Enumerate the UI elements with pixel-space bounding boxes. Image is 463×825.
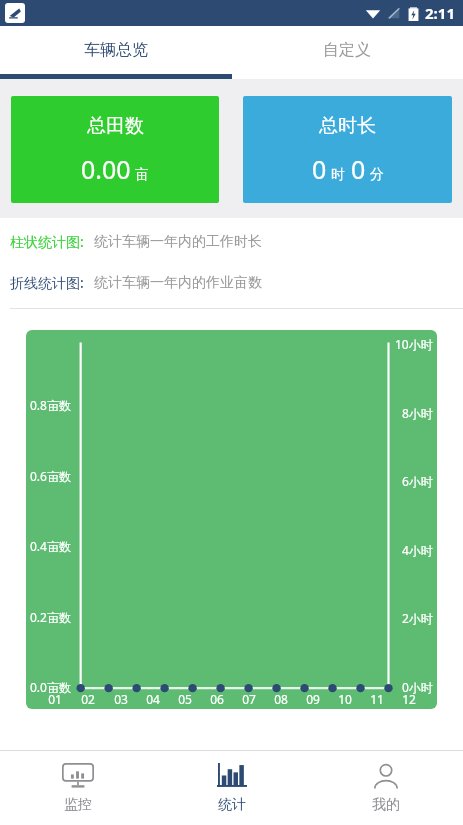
staticText: 0 bbox=[351, 152, 366, 186]
staticText: 柱状统计图: bbox=[10, 232, 84, 251]
staticText: 07 bbox=[242, 691, 256, 707]
staticText: 10小时 bbox=[395, 336, 433, 352]
staticText: 0小时 bbox=[402, 679, 433, 695]
staticText: 04 bbox=[146, 691, 160, 707]
staticText: 11 bbox=[370, 691, 384, 707]
button[interactable]: 总田数 bbox=[11, 96, 219, 203]
staticText: 10 bbox=[338, 691, 352, 707]
staticText: 01 bbox=[48, 691, 62, 707]
staticText: 06 bbox=[210, 691, 224, 707]
button[interactable]: 我的 bbox=[309, 751, 463, 825]
staticText: 02 bbox=[81, 691, 95, 707]
staticText: 总时长 bbox=[319, 114, 376, 138]
staticText: 监控 bbox=[64, 796, 92, 814]
button[interactable]: 监控 bbox=[0, 751, 155, 825]
staticText: 09 bbox=[306, 691, 320, 707]
staticText: 0.6亩数 bbox=[30, 468, 71, 484]
staticText: 统计 bbox=[218, 796, 246, 814]
staticText: 分 bbox=[370, 166, 384, 184]
staticText: 2:11 bbox=[425, 3, 455, 23]
staticText: 12 bbox=[402, 691, 416, 707]
staticText: 0.8亩数 bbox=[30, 397, 71, 413]
staticText: 0.2亩数 bbox=[30, 609, 71, 625]
staticText: 0.0亩数 bbox=[30, 679, 71, 695]
staticText: 统计车辆一年内的作业亩数 bbox=[94, 274, 262, 292]
staticText: 4小时 bbox=[402, 542, 433, 558]
button[interactable]: 车辆总览 bbox=[0, 26, 231, 74]
button[interactable]: 自定义 bbox=[231, 26, 463, 74]
staticText: 03 bbox=[114, 691, 128, 707]
staticText: 2小时 bbox=[402, 610, 433, 626]
staticText: 时 bbox=[331, 166, 345, 184]
staticText: 8小时 bbox=[402, 405, 433, 421]
staticText: 05 bbox=[178, 691, 192, 707]
staticText: 亩 bbox=[135, 166, 149, 184]
staticText: 6小时 bbox=[402, 473, 433, 489]
staticText: 车辆总览 bbox=[84, 40, 148, 60]
staticText: 自定义 bbox=[323, 40, 371, 60]
staticText: 08 bbox=[274, 691, 288, 707]
button[interactable]: 统计 bbox=[155, 751, 309, 825]
button[interactable]: 总时长 bbox=[243, 96, 452, 203]
staticText: 0.00 bbox=[81, 152, 131, 186]
staticText: 0 bbox=[312, 152, 327, 186]
staticText: 统计车辆一年内的工作时长 bbox=[94, 233, 262, 251]
staticText: 总田数 bbox=[87, 114, 144, 138]
staticText: 折线统计图: bbox=[10, 273, 84, 292]
staticText: 我的 bbox=[372, 796, 400, 814]
staticText: 0.4亩数 bbox=[30, 538, 71, 554]
